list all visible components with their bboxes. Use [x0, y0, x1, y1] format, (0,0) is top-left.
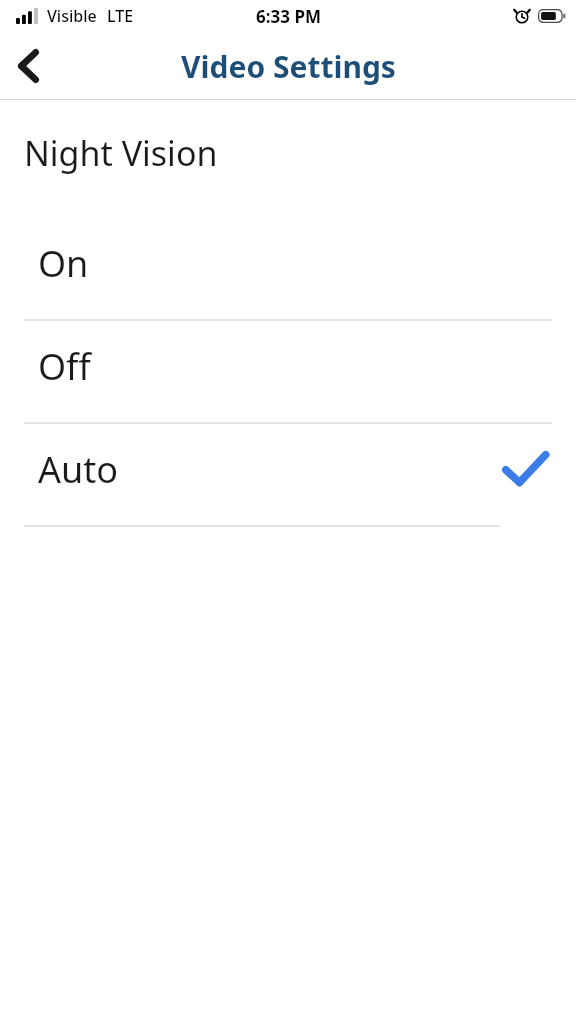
- button[interactable]: Off: [0, 321, 576, 424]
- staticText: Visible: [47, 5, 97, 27]
- staticText: Auto: [38, 445, 119, 494]
- staticText: Off: [38, 342, 91, 391]
- button[interactable]: On: [0, 218, 576, 321]
- staticText: 6:33 PM: [256, 5, 321, 28]
- staticText: Video Settings: [181, 46, 396, 87]
- staticText: LTE: [107, 5, 134, 27]
- button[interactable]: Auto: [0, 424, 576, 527]
- button[interactable]: Back: [0, 38, 56, 94]
- staticText: On: [38, 239, 89, 288]
- staticText: Night Vision: [24, 130, 218, 176]
